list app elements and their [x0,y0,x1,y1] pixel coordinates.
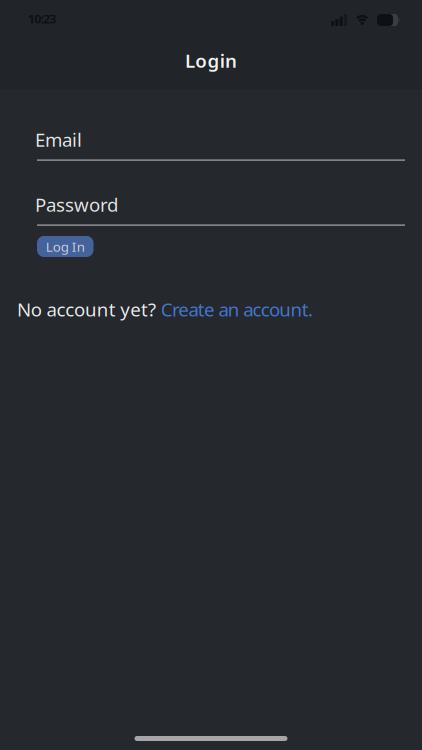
button[interactable]: Email text field [0,127,405,161]
staticText: Login [185,48,237,73]
button[interactable]: Log In [37,236,93,257]
button[interactable]: Password text field [0,192,405,226]
staticText: Email [35,127,82,152]
staticText: Log In [46,238,85,255]
staticText: Password [35,192,118,217]
button[interactable]: Create an account. [161,297,313,322]
staticText: No account yet? [17,297,161,322]
staticText: Create an account. [161,297,313,322]
staticText: 10:23 [28,11,57,27]
